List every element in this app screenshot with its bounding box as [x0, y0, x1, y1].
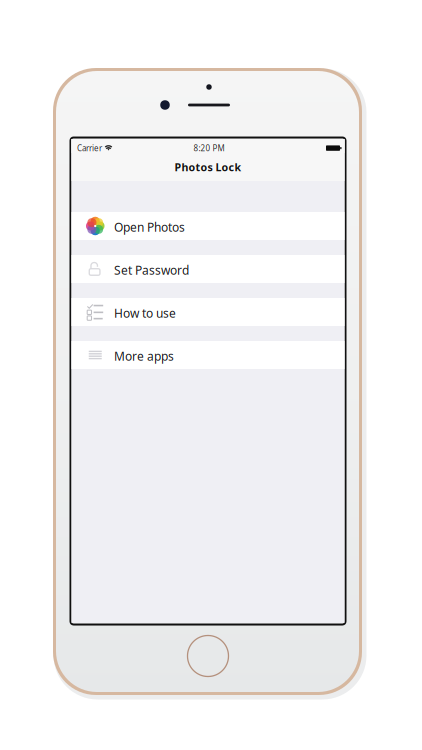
button[interactable]: More apps	[71, 341, 344, 369]
staticText: Carrier	[77, 143, 102, 153]
staticText: Photos Lock	[174, 160, 241, 174]
staticText: More apps	[114, 348, 174, 364]
staticText: Open Photos	[114, 219, 185, 235]
staticText: How to use	[114, 305, 176, 321]
staticText: 8:20 PM	[193, 143, 224, 153]
button[interactable]: Set Password	[71, 255, 344, 283]
button[interactable]: Open Photos	[71, 212, 344, 240]
staticText: Set Password	[114, 262, 189, 278]
button[interactable]: How to use	[71, 298, 344, 326]
